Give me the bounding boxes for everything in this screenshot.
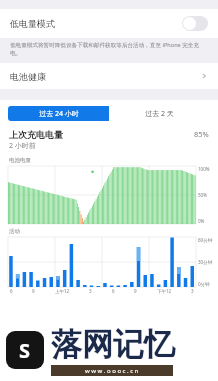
staticText: 100% (198, 166, 210, 172)
staticText: 电池电量 (9, 157, 31, 164)
staticText: 2 小时前 (9, 141, 36, 151)
staticText: 低电量模式将暂时降低设备下载和邮件获取等后台活动，直至 iPhone 完全充电。 (10, 41, 206, 57)
button[interactable]: 过去 24 小时 (8, 106, 109, 121)
staticText: 6 (10, 288, 13, 294)
staticText: 上次充电电量 (9, 129, 63, 140)
staticText: 低电量模式 (10, 18, 55, 29)
staticText: 上午12 (55, 288, 70, 294)
staticText: 落网记忆 (51, 325, 175, 364)
staticText: 9 (32, 288, 35, 294)
button[interactable]: Low Power Mode toggle (182, 16, 208, 31)
staticText: 过去 2 天 (145, 109, 174, 119)
staticText: 9 (134, 288, 137, 294)
staticText: 30分钟 (198, 259, 213, 265)
staticText: 50% (198, 192, 207, 198)
other: Open battery health (200, 72, 208, 80)
button[interactable]: 低电量模式 (0, 9, 218, 38)
staticText: 85% (194, 129, 209, 139)
staticText: w w w . o o o c . c n (85, 367, 139, 375)
button[interactable]: 过去 2 天 (109, 106, 210, 121)
staticText: 3 (191, 288, 194, 294)
staticText: S (19, 337, 31, 364)
staticText: 过去 24 小时 (39, 109, 79, 119)
staticText: 6 (112, 288, 115, 294)
staticText: 电池健康 (10, 71, 46, 82)
button[interactable]: 电池健康 (0, 63, 218, 89)
staticText: 60分钟 (198, 237, 213, 243)
staticText: 3 (89, 288, 92, 294)
staticText: 下午12 (157, 288, 172, 294)
staticText: 0% (198, 218, 205, 224)
staticText: 活动 (9, 228, 20, 235)
staticText: 0分钟 (198, 281, 210, 287)
